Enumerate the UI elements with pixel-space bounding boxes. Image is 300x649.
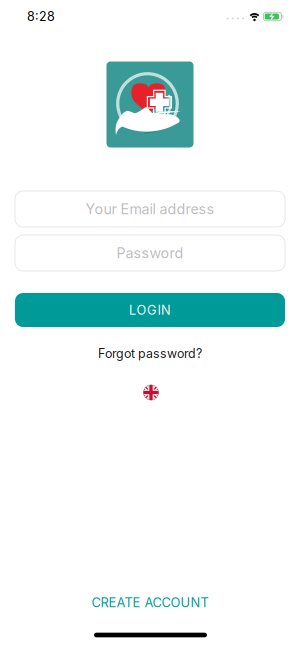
staticText: CREATE ACCOUNT xyxy=(91,595,208,610)
staticText: Your Email address xyxy=(85,200,214,218)
button[interactable]: Change language xyxy=(143,385,159,400)
staticText: Password xyxy=(116,244,183,262)
button[interactable]: Forgot password? xyxy=(98,346,202,361)
button[interactable]: Password xyxy=(15,235,285,271)
staticText: 8:28 xyxy=(27,9,55,24)
staticText: Forgot password? xyxy=(98,346,202,361)
staticText: LOGIN xyxy=(129,302,171,318)
button[interactable]: CREATE ACCOUNT xyxy=(91,595,208,610)
button[interactable]: Your Email address xyxy=(15,191,285,227)
button[interactable]: LOGIN xyxy=(15,293,285,327)
